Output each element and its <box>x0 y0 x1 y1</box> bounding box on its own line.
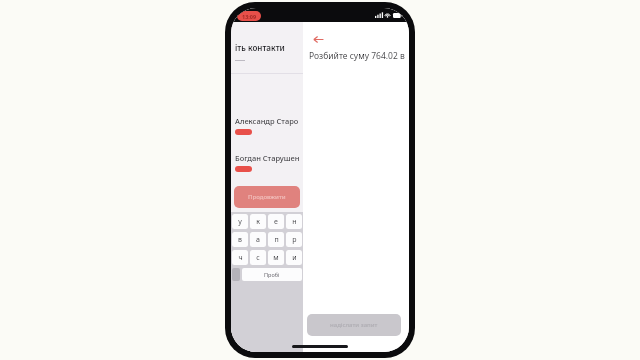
button[interactable]: Александр Старо <box>231 116 303 135</box>
staticText: м <box>273 253 279 263</box>
staticText: в <box>238 235 242 245</box>
staticText: надіслати запит <box>330 321 378 329</box>
button[interactable]: с <box>250 250 266 265</box>
button[interactable]: а <box>250 232 266 247</box>
staticText: е <box>274 217 278 227</box>
staticText: ч <box>238 253 243 263</box>
staticText: Пробі <box>264 271 280 278</box>
button[interactable]: в <box>232 232 248 247</box>
button[interactable]: Продовжити <box>234 186 300 208</box>
staticText: с <box>256 253 260 263</box>
button[interactable]: е <box>268 214 284 229</box>
button[interactable]: у <box>232 214 248 229</box>
staticText: к <box>256 217 260 227</box>
button[interactable]: п <box>268 232 284 247</box>
button[interactable]: Богдан Старушен <box>231 153 303 172</box>
button[interactable]: м <box>268 250 284 265</box>
staticText: и <box>292 253 297 263</box>
staticText: Продовжити <box>248 193 286 201</box>
button[interactable]: Пробі <box>242 268 302 281</box>
button[interactable]: Back <box>309 30 327 48</box>
staticText: іть контакти <box>235 42 285 53</box>
staticText: р <box>292 235 297 245</box>
staticText: Александр Старо <box>235 116 299 126</box>
staticText: Богдан Старушен <box>235 153 300 163</box>
staticText: 13:09 <box>242 13 257 20</box>
staticText: п <box>274 235 279 245</box>
staticText: Розбийте суму 764.02 в <box>309 50 405 62</box>
button[interactable]: Shift <box>232 268 240 281</box>
button[interactable]: и <box>286 250 302 265</box>
button[interactable]: н <box>286 214 302 229</box>
button[interactable]: ч <box>232 250 248 265</box>
button[interactable]: надіслати запит <box>307 314 401 336</box>
button[interactable]: р <box>286 232 302 247</box>
staticText: а <box>256 235 260 245</box>
staticText: у <box>238 217 242 227</box>
button[interactable]: к <box>250 214 266 229</box>
button[interactable]: іть контакти <box>231 34 303 60</box>
staticText: н <box>292 217 297 227</box>
